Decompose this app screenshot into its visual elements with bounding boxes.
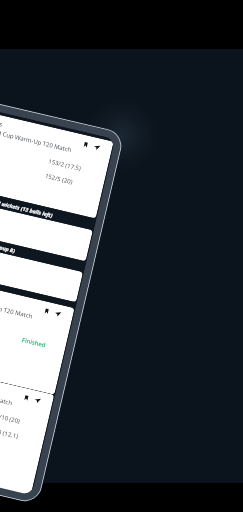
other: Share <box>34 397 41 404</box>
other: Bookmark <box>45 309 49 314</box>
other: Bookmark <box>24 395 28 401</box>
staticText: Match abandoned (Group B) <box>0 231 16 254</box>
button[interactable] <box>0 196 93 261</box>
other: Share <box>93 144 100 151</box>
other: Share <box>54 311 61 317</box>
staticText: 153/2 (17.5) <box>48 157 82 173</box>
button[interactable] <box>0 238 83 302</box>
button[interactable]: ICC Men's T20 World Cup Warm-Up T20 Matc… <box>0 108 114 218</box>
button[interactable]: ICC Men's T20 World Cup Warm-Up T20 Matc… <box>0 361 54 495</box>
staticText: Finished <box>21 336 47 350</box>
staticText: ICC Men's T20 World Cup Warm-Up T20 Matc… <box>0 281 36 321</box>
button[interactable]: ICC Men's T20 World Cup Warm-Up T20 Matc… <box>0 274 75 395</box>
staticText: 152/5 (20) <box>44 172 73 186</box>
staticText: 131/0 (12.1) <box>0 425 20 441</box>
other: Bookmark <box>84 142 88 148</box>
staticText: ICC Men's T20 World Cup Warm-Up T20 Matc… <box>0 115 75 154</box>
staticText: 130/10 (20) <box>0 410 21 426</box>
staticText: ICC Men's T20 World Cup Warm-Up T20 Matc… <box>0 368 15 407</box>
staticText: Namibia won by 8 wickets (13 balls left) <box>0 189 54 219</box>
